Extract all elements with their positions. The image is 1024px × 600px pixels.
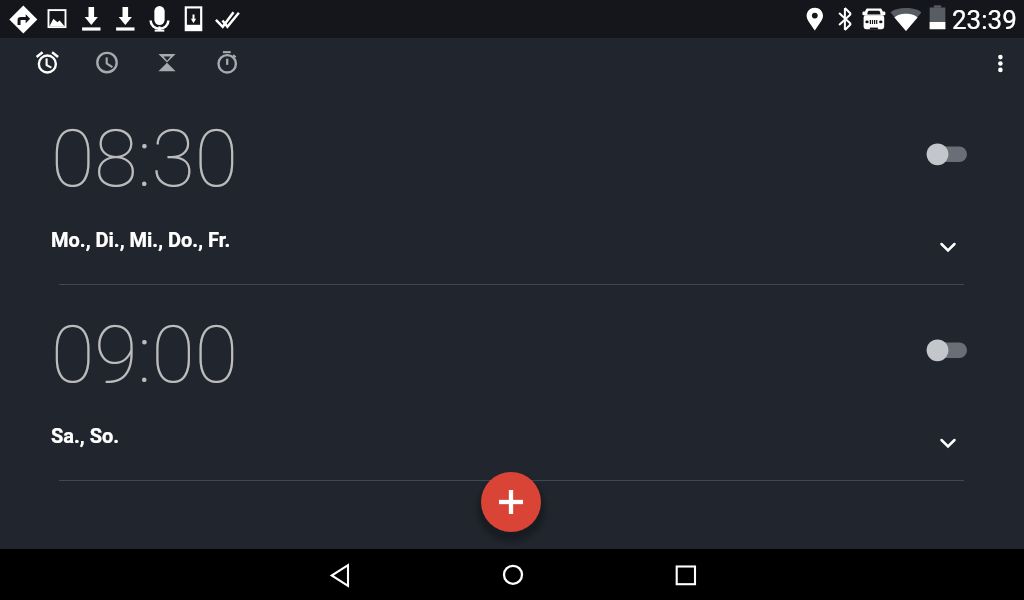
button[interactable]: Toggle alarm <box>914 132 974 177</box>
staticText: 09:00 <box>51 309 239 402</box>
staticText: Mo., Di., Mi., Do., Fr. <box>51 228 231 251</box>
staticText: Sa., So. <box>51 424 120 447</box>
button[interactable]: Back <box>310 549 370 600</box>
button[interactable]: Expand alarm <box>924 223 972 271</box>
button[interactable]: More options <box>976 39 1024 87</box>
button[interactable]: Expand alarm <box>924 419 972 467</box>
button[interactable]: Timer <box>139 38 195 86</box>
staticText: 23:39 <box>952 5 1017 35</box>
staticText: 08:30 <box>51 113 239 206</box>
button[interactable]: 09:00 <box>0 284 1024 480</box>
button[interactable]: Recent apps <box>656 549 716 600</box>
button[interactable]: Home <box>483 549 543 600</box>
button[interactable]: Alarm <box>19 38 75 86</box>
button[interactable]: Clock <box>79 38 135 86</box>
button[interactable]: Stopwatch <box>199 38 255 86</box>
button[interactable]: 08:30 <box>0 88 1024 284</box>
button[interactable]: Add alarm <box>481 472 541 532</box>
button[interactable]: Toggle alarm <box>914 328 974 373</box>
